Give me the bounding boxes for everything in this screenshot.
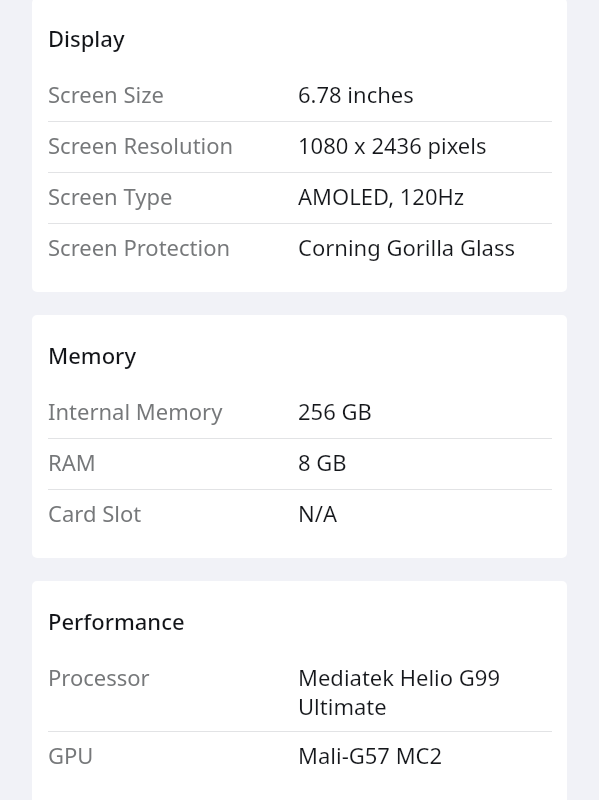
staticText: Mali-G57 MC2 — [298, 741, 443, 770]
staticText: Screen Resolution — [48, 131, 298, 160]
staticText: Memory — [48, 341, 137, 370]
staticText: 8 GB — [298, 448, 347, 477]
staticText: Screen Protection — [48, 233, 298, 262]
staticText: Mediatek Helio G99 Ultimate — [298, 663, 552, 721]
button[interactable]: Card Slot — [32, 490, 567, 540]
staticText: Card Slot — [48, 499, 298, 528]
staticText: 256 GB — [298, 397, 372, 426]
staticText: Performance — [48, 607, 185, 636]
button[interactable]: Screen Resolution — [32, 122, 567, 172]
staticText: Display — [48, 24, 125, 53]
button[interactable]: Screen Type — [32, 173, 567, 223]
staticText: Screen Size — [48, 80, 298, 109]
staticText: RAM — [48, 448, 298, 477]
staticText: Screen Type — [48, 182, 298, 211]
staticText: 1080 x 2436 pixels — [298, 131, 487, 160]
button[interactable]: Screen Protection — [32, 224, 567, 274]
button[interactable]: Screen Size — [32, 71, 567, 121]
button[interactable]: GPU — [32, 732, 567, 782]
staticText: Corning Gorilla Glass — [298, 233, 516, 262]
staticText: GPU — [48, 741, 298, 770]
button[interactable]: Processor — [32, 654, 567, 731]
staticText: 6.78 inches — [298, 80, 414, 109]
staticText: AMOLED, 120Hz — [298, 182, 465, 211]
staticText: N/A — [298, 499, 337, 528]
staticText: Internal Memory — [48, 397, 298, 426]
button[interactable]: Internal Memory — [32, 388, 567, 438]
button[interactable]: RAM — [32, 439, 567, 489]
staticText: Processor — [48, 663, 298, 692]
